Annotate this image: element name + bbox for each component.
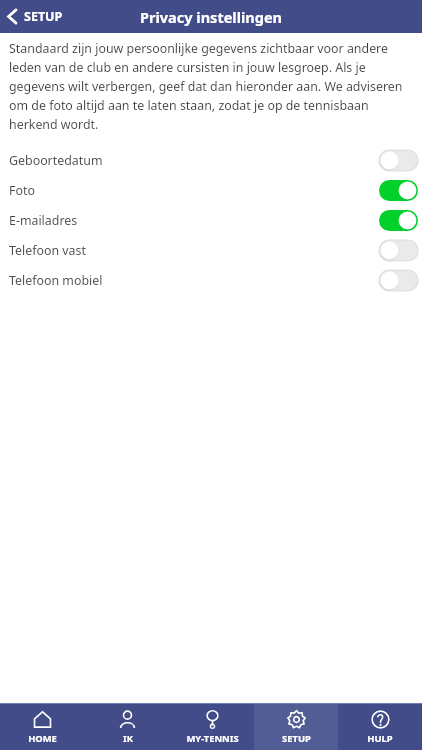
staticText: Geboortedatum bbox=[9, 152, 103, 169]
button[interactable]: HULP bbox=[338, 704, 422, 750]
staticText: HULP bbox=[367, 732, 393, 745]
staticText: Foto bbox=[9, 182, 35, 199]
button[interactable]: MY-TENNIS bbox=[170, 704, 254, 750]
staticText: SETUP bbox=[282, 732, 311, 745]
button[interactable]: HOME bbox=[0, 704, 85, 750]
staticText: MY-TENNIS bbox=[186, 732, 239, 745]
staticText: SETUP bbox=[24, 8, 63, 25]
button[interactable]: Telefoon mobiel bbox=[0, 265, 422, 295]
button[interactable]: SETUP bbox=[254, 704, 338, 750]
staticText: E-mailadres bbox=[9, 212, 78, 229]
button[interactable]: IK bbox=[85, 704, 170, 750]
staticText: IK bbox=[123, 732, 133, 745]
staticText: Standaard zijn jouw persoonlijke gegeven… bbox=[9, 40, 409, 132]
button[interactable]: E-mailadres bbox=[0, 205, 422, 235]
staticText: Telefoon mobiel bbox=[9, 272, 103, 289]
button[interactable]: Geboortedatum bbox=[0, 145, 422, 175]
staticText: Telefoon vast bbox=[9, 242, 86, 259]
button[interactable]: Foto bbox=[0, 175, 422, 205]
button[interactable]: Telefoon vast bbox=[0, 235, 422, 265]
staticText: HOME bbox=[28, 732, 57, 745]
staticText: Privacy instellingen bbox=[140, 7, 282, 27]
button[interactable]: SETUP bbox=[0, 4, 73, 29]
